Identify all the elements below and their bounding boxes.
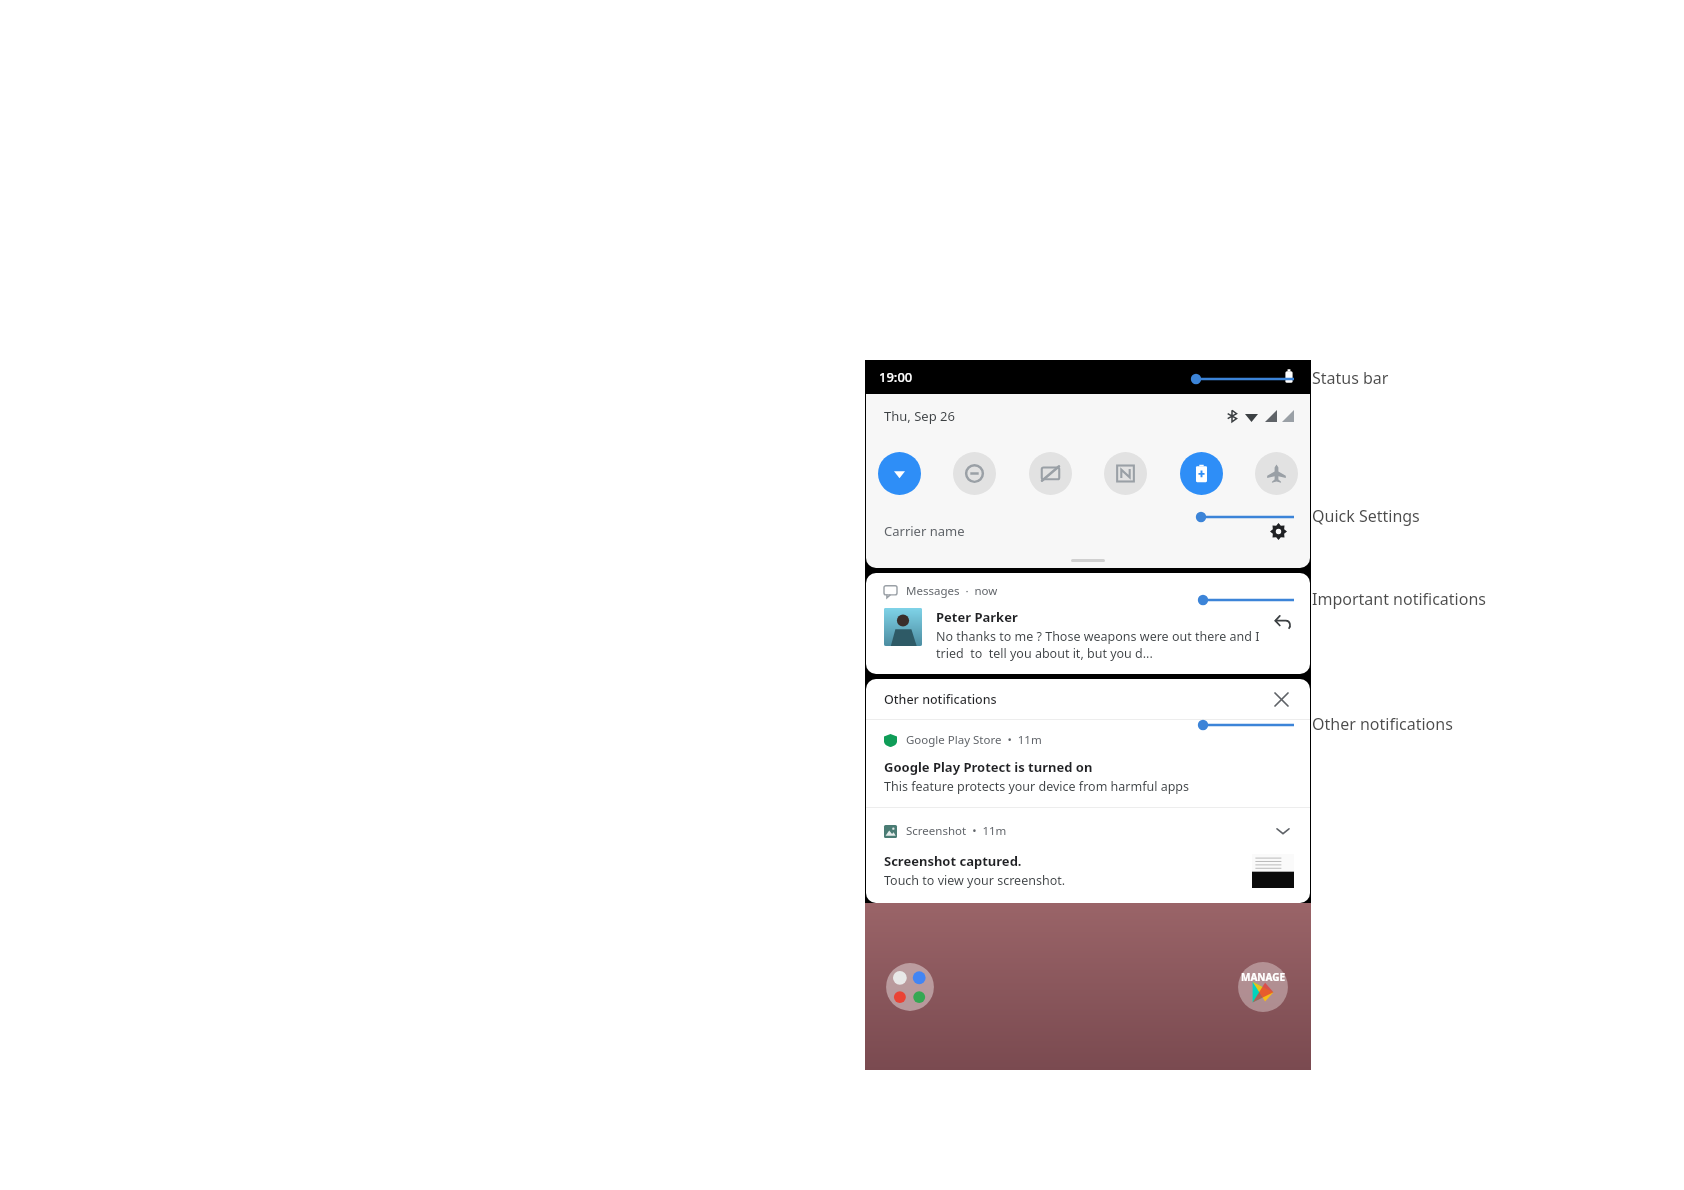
button[interactable]: Airplane mode (1255, 452, 1298, 495)
button[interactable]: Screenshot • 11m (866, 808, 1310, 903)
staticText: This feature protects your device from h… (884, 778, 1190, 795)
staticText: Peter Parker (936, 608, 1018, 626)
button[interactable]: Cast (1029, 452, 1072, 495)
staticText: Other notifications (1312, 713, 1453, 735)
button[interactable]: Clear all (1270, 688, 1292, 710)
staticText: Status bar (1312, 367, 1389, 389)
button[interactable]: Google Play Store • 11m (866, 720, 1310, 807)
button[interactable]: Reply (1270, 608, 1296, 634)
staticText: Screenshot • 11m (906, 823, 1007, 839)
button[interactable]: Expand (1272, 820, 1294, 842)
staticText: 19:00 (879, 368, 913, 386)
button[interactable]: Wi-Fi (878, 452, 921, 495)
button[interactable]: Messages · now (866, 573, 1310, 674)
staticText: Messages · now (906, 583, 998, 599)
staticText: Touch to view your screenshot. (884, 872, 1066, 889)
button[interactable]: NFC (1104, 452, 1147, 495)
staticText: Screenshot captured. (884, 852, 1022, 870)
staticText: Important notifications (1312, 588, 1486, 610)
staticText: MANAGE (1241, 970, 1286, 984)
staticText: Thu, Sep 26 (884, 407, 955, 425)
staticText: Google Play Store • 11m (906, 732, 1042, 748)
staticText: Other notifications (884, 691, 997, 708)
staticText: Quick Settings (1312, 505, 1420, 527)
button[interactable]: Do Not Disturb (953, 452, 996, 495)
button[interactable]: Settings (1266, 519, 1290, 543)
button[interactable]: Other notifications (866, 679, 1310, 719)
staticText: No thanks to me ? Those weapons were out… (936, 628, 1262, 662)
staticText: Google Play Protect is turned on (884, 758, 1093, 776)
staticText: Carrier name (884, 522, 965, 540)
button[interactable]: Battery Saver (1180, 452, 1223, 495)
